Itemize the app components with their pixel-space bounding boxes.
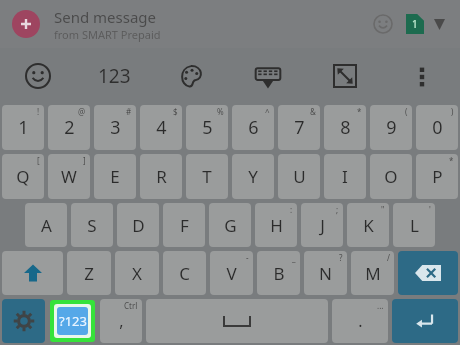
staticText: 9 [386,115,397,140]
staticText: " [381,204,385,215]
button[interactable]: B [257,251,300,295]
staticText: Send message [54,7,157,27]
button[interactable]: 123 [76,48,152,103]
button[interactable]: Hide keyboard [229,48,306,103]
button[interactable]: Add attachment [12,10,40,38]
button[interactable]: A [25,203,67,247]
staticText: # [126,106,132,117]
button[interactable] [2,251,63,295]
button[interactable]: 9 [370,105,412,150]
button[interactable]: D [117,203,159,247]
button[interactable]: F [163,203,205,247]
staticText: J [320,214,325,237]
button[interactable]: K [347,203,389,247]
button[interactable]: Emoji [370,11,396,37]
button[interactable]: G [209,203,251,247]
staticText: F [180,214,189,237]
button[interactable]: N [304,251,347,295]
staticText: I [342,165,348,188]
staticText: ' [429,204,431,215]
staticText: N [319,262,332,285]
staticText: P [432,165,443,188]
button[interactable]: W [48,154,90,199]
staticText: 123 [98,63,131,89]
button[interactable]: , [100,299,142,343]
staticText: D [132,214,145,237]
staticText: & [310,106,316,117]
button[interactable]: M [351,251,394,295]
button[interactable]: E [94,154,136,199]
staticText: X [132,262,142,285]
staticText: $ [173,106,178,117]
button[interactable]: 5 [186,105,228,150]
staticText: _ [292,252,296,263]
button[interactable]: 3 [94,105,136,150]
staticText: ^ [265,106,270,117]
staticText: - [246,252,249,263]
button[interactable]: O [370,154,412,199]
staticText: S [87,214,97,237]
button[interactable]: X [115,251,159,295]
staticText: ) [451,106,454,117]
button[interactable]: ?123 [48,298,97,344]
staticText: 0 [432,115,443,140]
button[interactable]: 1 [2,105,44,150]
staticText: R [156,165,167,188]
button[interactable]: . [332,299,388,343]
button[interactable]: 8 [324,105,366,150]
button[interactable]: C [163,251,206,295]
button[interactable]: P [416,154,458,199]
button[interactable]: 7 [278,105,320,150]
button[interactable]: 0 [416,105,458,150]
button[interactable]: V [210,251,253,295]
button[interactable]: I [324,154,366,199]
staticText: , [119,310,124,332]
button[interactable] [2,299,45,343]
button[interactable]: SIM 1 [406,14,424,34]
staticText: Z [84,262,94,285]
button[interactable]: Resize keyboard [306,48,383,103]
staticText: 1 [18,115,29,140]
staticText: ] [83,155,86,166]
button[interactable]: R [140,154,182,199]
button[interactable] [398,251,458,295]
button[interactable] [392,299,458,343]
button[interactable] [146,299,328,343]
button[interactable]: J [301,203,343,247]
staticText: A [41,214,52,237]
staticText: 1 [412,17,418,31]
staticText: 5 [202,115,213,140]
button[interactable]: L [393,203,435,247]
staticText: 8 [340,115,351,140]
staticText: O [384,165,398,188]
staticText: [ [37,155,40,166]
button[interactable]: More [430,15,448,33]
button[interactable]: Z [67,251,111,295]
staticText: Q [16,165,30,188]
staticText: * [357,106,362,117]
button[interactable]: Q [2,154,44,199]
button[interactable]: U [278,154,320,199]
button[interactable]: Theme [152,48,229,103]
button[interactable]: Emoticons [0,48,76,103]
staticText: W [61,165,77,188]
staticText: Ctrl [124,300,138,311]
button[interactable]: T [186,154,228,199]
staticText: B [273,262,285,285]
staticText: C [179,262,190,285]
button[interactable]: 6 [232,105,274,150]
button[interactable]: Y [232,154,274,199]
staticText: V [226,262,237,285]
staticText: Y [248,165,258,188]
staticText: 2 [64,115,75,140]
button[interactable]: H [255,203,297,247]
staticText: L [410,214,419,237]
staticText: M [365,262,381,285]
staticText: / [387,252,390,263]
button[interactable]: 2 [48,105,90,150]
button[interactable]: 4 [140,105,182,150]
staticText: 3 [110,115,121,140]
button[interactable]: S [71,203,113,247]
button[interactable]: More options [383,48,460,103]
staticText: . [358,310,363,332]
